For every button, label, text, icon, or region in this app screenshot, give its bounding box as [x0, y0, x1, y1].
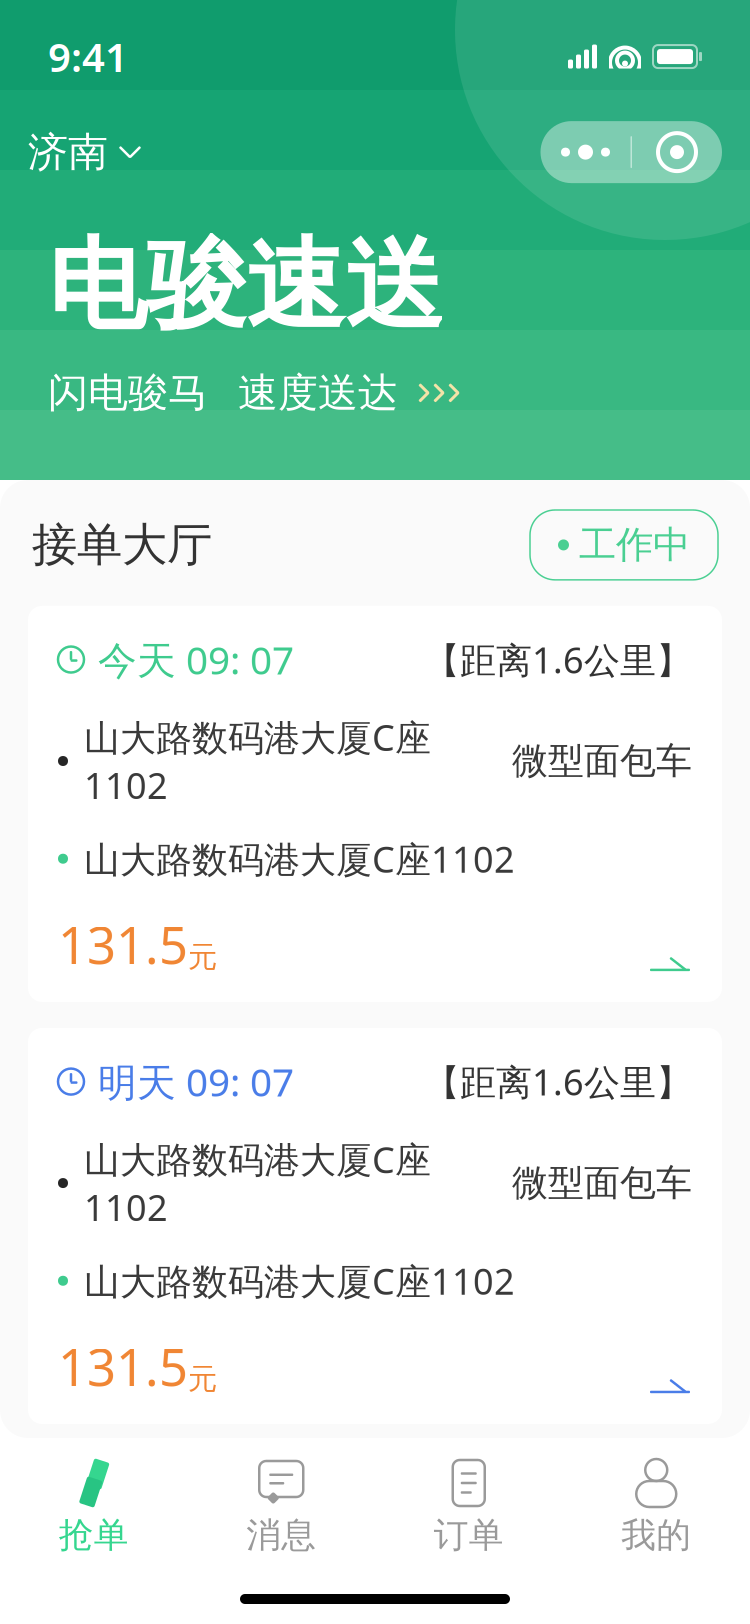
staticText: 131.5 — [58, 911, 188, 978]
button[interactable]: 工作中 — [530, 510, 718, 580]
staticText: 山大路数码港大厦C座1102 — [84, 1135, 431, 1231]
staticText: 明天 09: 07 — [98, 1056, 294, 1107]
staticText: 今天 09: 07 — [98, 634, 294, 685]
staticText: 山大路数码港大厦C座1102 — [84, 835, 515, 883]
staticText: 即时订单 — [98, 1478, 254, 1526]
button[interactable]: 抢单 — [0, 1454, 187, 1561]
staticText: 【距离1.6公里】 — [424, 1058, 692, 1105]
staticText: 【距离1.6公里】 — [424, 1478, 692, 1526]
staticText: 【距离1.6公里】 — [424, 636, 692, 683]
staticText: 元 — [188, 939, 217, 975]
staticText: 微型面包车 — [512, 739, 692, 783]
button[interactable]: 我的 — [562, 1454, 750, 1561]
staticText: 山大路数码港大厦C座1102 — [84, 1554, 431, 1624]
button[interactable]: 济南 — [28, 128, 142, 177]
staticText: 山大路数码港大厦C座1102 — [84, 713, 431, 809]
button[interactable]: 更多 — [540, 121, 630, 183]
button[interactable]: 订单 — [375, 1454, 562, 1561]
staticText: 我的 — [621, 1514, 691, 1557]
button[interactable]: 定位 — [632, 121, 722, 183]
button[interactable]: 今天 09: 07 — [28, 606, 722, 1002]
staticText: 工作中 — [579, 522, 690, 568]
button[interactable]: 即时订单 — [28, 1450, 722, 1624]
button[interactable]: 明天 09: 07 — [28, 1028, 722, 1424]
staticText: 订单 — [434, 1514, 504, 1557]
staticText: 131.5 — [58, 1333, 188, 1400]
staticText: 9:41 — [48, 30, 128, 83]
staticText: 电骏速送 — [48, 225, 444, 346]
staticText: 接单大厅 — [32, 517, 212, 573]
staticText: 抢单 — [59, 1514, 129, 1557]
staticText: 速度送达 — [238, 368, 398, 417]
staticText: 消息 — [246, 1514, 316, 1557]
staticText: 闪电骏马 — [48, 368, 208, 417]
staticText: 济南 — [28, 128, 108, 177]
button[interactable]: 消息 — [187, 1454, 375, 1561]
staticText: 元 — [188, 1361, 217, 1397]
staticText: 微型面包车 — [512, 1161, 692, 1205]
staticText: 山大路数码港大厦C座1102 — [84, 1257, 515, 1305]
